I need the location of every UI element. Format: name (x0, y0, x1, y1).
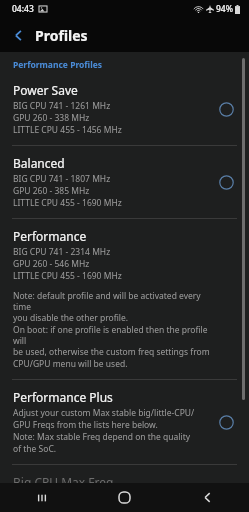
staticText: GPU 260 - 385 MHz (13, 185, 90, 197)
staticText: Balanced (13, 155, 65, 171)
button[interactable]: Power Save (0, 73, 249, 145)
staticText: be used, otherwise the custom freq setti… (13, 346, 210, 358)
staticText: On boot: if one profile is enabled then … (13, 324, 213, 346)
staticText: Adjust your custom Max stable big/little… (13, 407, 195, 419)
staticText: Performance (13, 228, 87, 244)
button[interactable]: Back (166, 483, 249, 512)
button[interactable]: Big CPU Max Freq (0, 465, 249, 483)
staticText: Power Save (13, 82, 78, 98)
button[interactable]: Select Balanced (213, 169, 239, 195)
staticText: GPU 260 - 546 MHz (13, 258, 90, 270)
staticText: Performance Plus (13, 389, 113, 405)
button[interactable]: Balanced (0, 146, 249, 218)
staticText: 04:43 (12, 3, 34, 15)
button[interactable]: Select Performance Plus (213, 409, 239, 435)
staticText: GPU Freqs from the lists here below. (13, 419, 158, 431)
staticText: BIG CPU 741 - 1807 MHz (13, 173, 111, 185)
staticText: LITTLE CPU 455 - 1456 MHz (13, 124, 122, 136)
staticText: BIG CPU 741 - 1261 MHz (13, 100, 111, 112)
button[interactable]: Recent apps (0, 483, 83, 512)
staticText: Note: Max stable Freq depend on the qual… (13, 431, 191, 443)
staticText: 94% (216, 3, 233, 15)
staticText: Performance Profiles (13, 59, 103, 71)
staticText: Profiles (35, 26, 88, 45)
staticText: BIG CPU 741 - 2314 MHz (13, 246, 111, 258)
staticText: CPU/GPU menu will be used. (13, 358, 128, 370)
staticText: Note: default profile and will be activa… (13, 290, 213, 312)
staticText: Big CPU Max Freq (13, 474, 114, 483)
button[interactable]: Performance (0, 219, 249, 379)
staticText: LITTLE CPU 455 - 1690 MHz (13, 270, 122, 282)
button[interactable]: Performance Plus (0, 380, 249, 464)
staticText: GPU 260 - 338 MHz (13, 112, 90, 124)
staticText: LITTLE CPU 455 - 1690 MHz (13, 197, 122, 209)
staticText: of the SoC. (13, 443, 57, 455)
staticText: you disable the other profile. (13, 312, 129, 324)
button[interactable]: Home (83, 483, 166, 512)
button[interactable]: Select Power Save (213, 96, 239, 122)
button[interactable]: Back (6, 23, 30, 47)
